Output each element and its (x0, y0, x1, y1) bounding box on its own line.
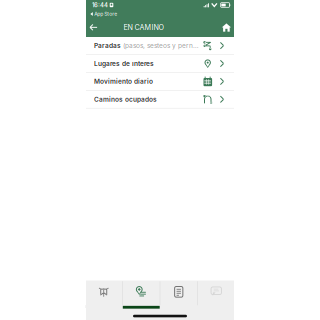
staticText: Movimiento diario (94, 77, 153, 85)
staticText: 16:44 (92, 1, 108, 9)
button[interactable]: Informes (160, 280, 197, 307)
button[interactable]: Animales (85, 280, 122, 307)
staticText: (pasos, sesteos y pernoc… (121, 42, 202, 49)
staticText: Lugares de interés (94, 59, 154, 67)
button[interactable]: Paradas (86, 37, 234, 55)
staticText: App Store (94, 11, 117, 17)
button[interactable]: Home (219, 18, 234, 37)
button[interactable]: Movimiento diario (86, 73, 234, 91)
staticText: Caminos ocupados (94, 95, 157, 103)
staticText: Paradas (94, 42, 121, 49)
staticText: EN CAMINO (123, 23, 164, 32)
button[interactable]: Lugares de interés (86, 55, 234, 73)
button[interactable]: Mensajes (198, 280, 235, 307)
button[interactable]: Recorridos (123, 280, 160, 307)
button[interactable]: Back (86, 18, 100, 37)
button[interactable]: Caminos ocupados (86, 91, 234, 109)
